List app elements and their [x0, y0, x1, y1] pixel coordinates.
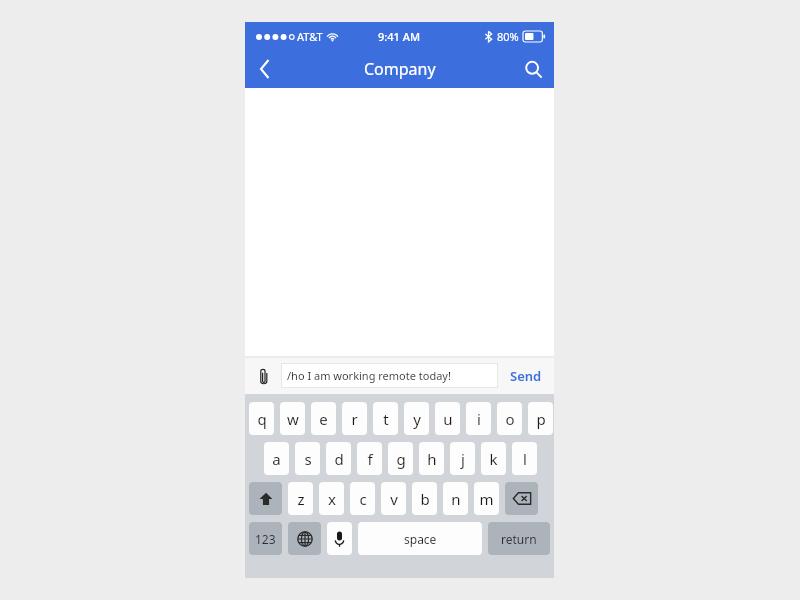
button[interactable]: q	[249, 402, 274, 435]
button[interactable]: Send	[506, 363, 546, 389]
button[interactable]: f	[357, 442, 382, 475]
staticText: l	[523, 449, 527, 469]
button[interactable]: p	[528, 402, 553, 435]
button[interactable]: Dictate	[327, 522, 352, 555]
button[interactable]: a	[264, 442, 289, 475]
button[interactable]: c	[350, 482, 375, 515]
staticText: g	[396, 449, 406, 469]
staticText: 123	[255, 531, 276, 547]
button[interactable]: l	[512, 442, 537, 475]
button[interactable]: j	[450, 442, 475, 475]
staticText: e	[319, 409, 328, 429]
button[interactable]: Attach file	[253, 365, 275, 387]
button[interactable]: z	[288, 482, 313, 515]
button[interactable]: w	[280, 402, 305, 435]
button[interactable]: e	[311, 402, 336, 435]
button[interactable]: h	[419, 442, 444, 475]
button[interactable]: Search	[512, 50, 554, 88]
staticText: m	[479, 489, 494, 509]
staticText: q	[257, 409, 267, 429]
staticText: a	[272, 449, 281, 469]
staticText: n	[451, 489, 461, 509]
button[interactable]: return	[488, 522, 550, 555]
staticText: AT&T	[297, 29, 323, 44]
staticText: return	[501, 531, 537, 547]
button[interactable]: i	[466, 402, 491, 435]
button[interactable]: x	[319, 482, 344, 515]
staticText: 9:41 AM	[378, 29, 421, 44]
button[interactable]: s	[295, 442, 320, 475]
staticText: z	[297, 489, 305, 509]
staticText: y	[413, 409, 421, 429]
button[interactable]: Delete	[505, 482, 538, 515]
button[interactable]: o	[497, 402, 522, 435]
button[interactable]: Shift	[249, 482, 282, 515]
button[interactable]: /ho I am working remote today!	[281, 363, 498, 388]
staticText: d	[334, 449, 344, 469]
button[interactable]: y	[404, 402, 429, 435]
button[interactable]: g	[388, 442, 413, 475]
staticText: u	[443, 409, 453, 429]
staticText: t	[383, 409, 389, 429]
staticText: k	[489, 449, 498, 469]
staticText: space	[404, 531, 437, 547]
staticText: s	[304, 449, 312, 469]
button[interactable]: n	[443, 482, 468, 515]
button[interactable]: b	[412, 482, 437, 515]
staticText: x	[328, 489, 336, 509]
button[interactable]: d	[326, 442, 351, 475]
staticText: 80%	[497, 29, 519, 44]
staticText: o	[505, 409, 515, 429]
button[interactable]: Back	[245, 50, 285, 88]
staticText: w	[287, 409, 299, 429]
button[interactable]: u	[435, 402, 460, 435]
staticText: h	[427, 449, 437, 469]
staticText: Company	[364, 58, 436, 80]
staticText: b	[420, 489, 430, 509]
staticText: Send	[510, 367, 542, 385]
button[interactable]: m	[474, 482, 499, 515]
staticText: c	[359, 489, 367, 509]
button[interactable]: t	[373, 402, 398, 435]
staticText: /ho I am working remote today!	[287, 368, 451, 383]
staticText: p	[536, 409, 546, 429]
button[interactable]: k	[481, 442, 506, 475]
button[interactable]: r	[342, 402, 367, 435]
button[interactable]: 123	[249, 522, 282, 555]
staticText: i	[477, 409, 481, 429]
staticText: v	[390, 489, 398, 509]
button[interactable]: Change keyboard language	[288, 522, 321, 555]
staticText: r	[351, 409, 358, 429]
staticText: f	[367, 449, 373, 469]
button[interactable]: space	[358, 522, 482, 555]
button[interactable]: v	[381, 482, 406, 515]
staticText: j	[461, 449, 465, 469]
